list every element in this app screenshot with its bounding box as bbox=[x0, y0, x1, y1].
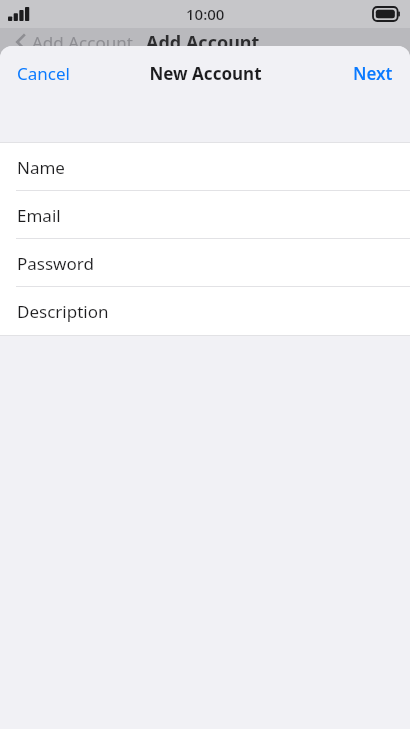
button[interactable]: Cancel bbox=[0, 54, 82, 93]
staticText: Cancel bbox=[17, 62, 70, 85]
staticText: New Account bbox=[149, 62, 262, 85]
staticText: Description bbox=[17, 300, 109, 323]
button[interactable]: Name bbox=[0, 143, 410, 191]
button[interactable]: Next bbox=[341, 54, 410, 93]
button[interactable]: Description bbox=[0, 287, 410, 335]
staticText: Next bbox=[353, 62, 393, 85]
staticText: Email bbox=[17, 204, 61, 227]
button[interactable]: Password bbox=[0, 239, 410, 287]
staticText: Add Account bbox=[32, 31, 133, 54]
staticText: 10:00 bbox=[186, 4, 225, 24]
staticText: Add Account bbox=[146, 30, 260, 55]
staticText: Name bbox=[17, 156, 65, 179]
staticText: Password bbox=[17, 252, 94, 275]
button[interactable]: Email bbox=[0, 191, 410, 239]
